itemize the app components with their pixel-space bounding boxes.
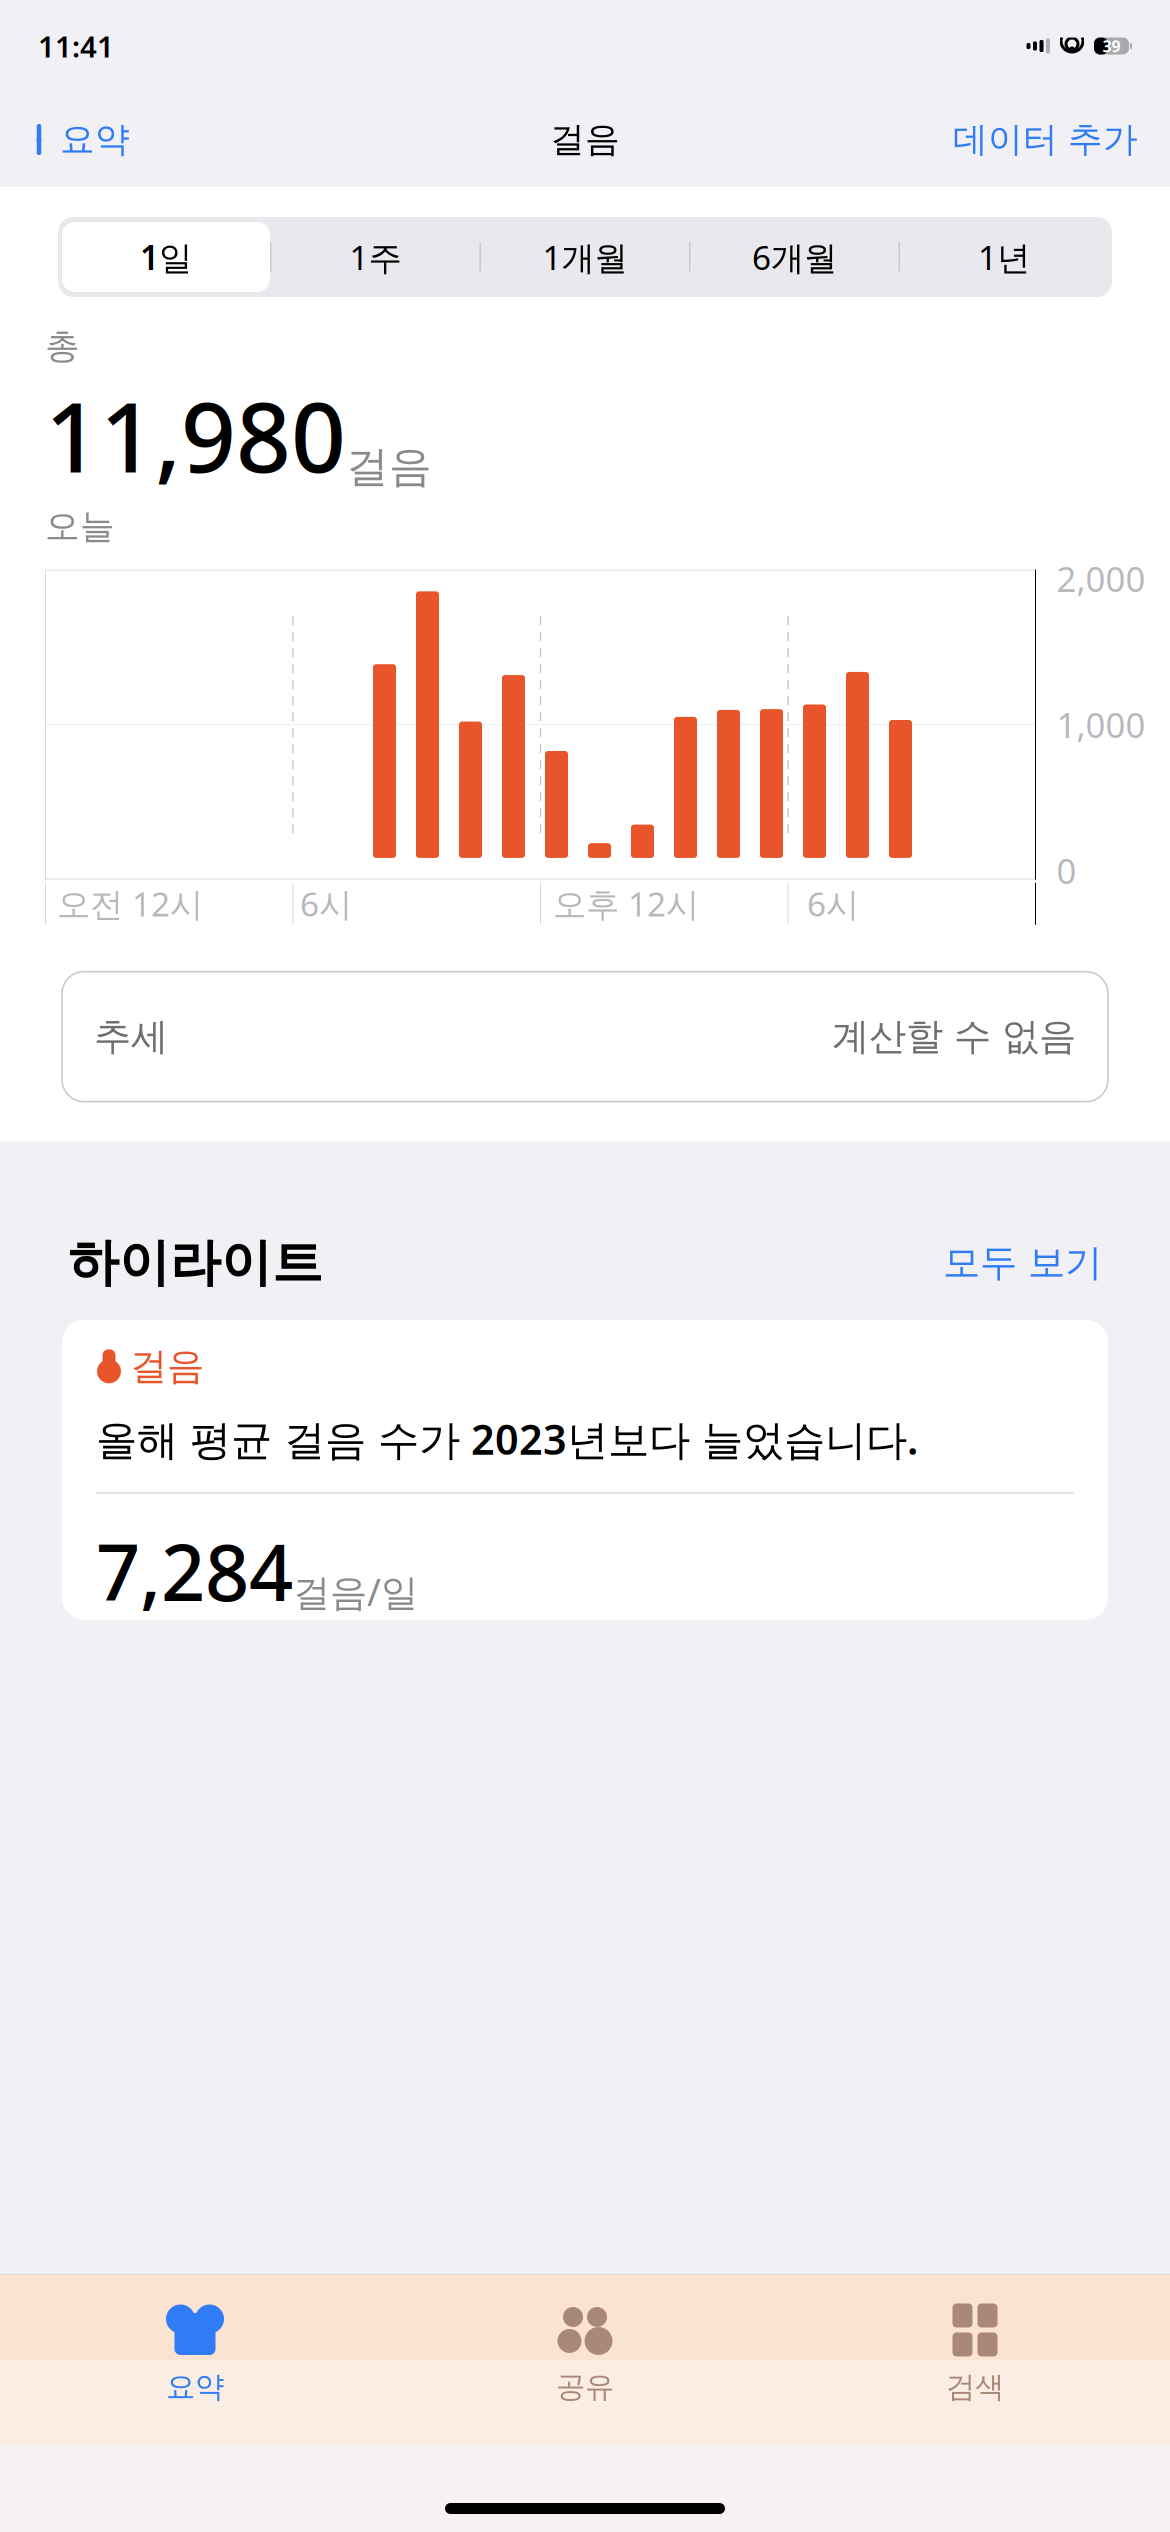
staticText: 모두 보기 xyxy=(943,1240,1102,1286)
button[interactable]: 공유 xyxy=(390,2298,780,2408)
button[interactable]: 1일 xyxy=(62,222,270,292)
staticText: 걸음 xyxy=(130,1343,204,1389)
staticText: 11,980 xyxy=(45,372,346,499)
button[interactable]: 추세 xyxy=(62,972,1108,1102)
staticText: 1개월 xyxy=(542,235,627,279)
staticText: 1년 xyxy=(978,235,1030,279)
button[interactable]: 요약 xyxy=(14,108,148,171)
staticText: 요약 xyxy=(166,2369,224,2405)
staticText: 오전 12시 xyxy=(57,881,203,926)
button[interactable]: 걸음 xyxy=(62,1320,1108,1620)
staticText: 걸음 xyxy=(550,118,620,161)
staticText: 11:41 xyxy=(38,26,114,65)
staticText: 걸음/일 xyxy=(293,1567,418,1616)
button[interactable]: 1개월 xyxy=(481,222,689,292)
staticText: 2,000 xyxy=(1056,556,1145,602)
staticText: 걸음 xyxy=(346,441,432,493)
button[interactable]: 1주 xyxy=(271,222,479,292)
staticText: 요약 xyxy=(60,118,130,161)
staticText: 검색 xyxy=(946,2369,1004,2405)
staticText: 공유 xyxy=(556,2369,614,2405)
staticText: 추세 xyxy=(94,1014,168,1060)
button[interactable]: 1년 xyxy=(900,222,1108,292)
button[interactable]: 6개월 xyxy=(690,222,898,292)
staticText: 39 xyxy=(1102,35,1120,57)
staticText: 하이라이트 xyxy=(68,1232,323,1294)
staticText: 올해 평균 걸음 수가 2023년보다 늘었습니다. xyxy=(96,1411,918,1466)
staticText: 계산할 수 없음 xyxy=(832,1014,1076,1060)
staticText: 1,000 xyxy=(1056,702,1145,748)
staticText: 6개월 xyxy=(752,235,837,279)
staticText: 데이터 추가 xyxy=(953,118,1138,161)
staticText: 1일 xyxy=(140,235,192,279)
button[interactable]: 요약 xyxy=(0,2298,390,2408)
button[interactable]: 검색 xyxy=(780,2298,1170,2408)
staticText: 7,284 xyxy=(96,1520,293,1622)
staticText: 총 xyxy=(45,325,80,368)
staticText: 오후 12시 xyxy=(553,881,699,926)
button[interactable]: 모두 보기 xyxy=(923,1232,1102,1294)
staticText: 6시 xyxy=(300,881,352,926)
staticText: 6시 xyxy=(807,881,859,926)
staticText: 0 xyxy=(1056,848,1076,894)
button[interactable]: 데이터 추가 xyxy=(935,108,1156,171)
staticText: 1주 xyxy=(349,235,401,279)
staticText: 오늘 xyxy=(45,505,115,548)
